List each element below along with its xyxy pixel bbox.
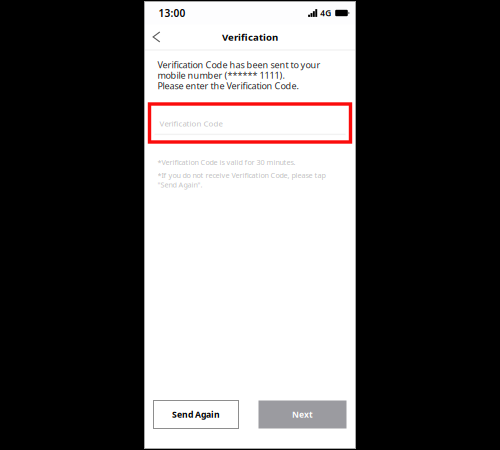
staticText: Verification Code has been sent to your [157, 59, 320, 71]
staticText: Please enter the Verification Code. [157, 80, 298, 92]
staticText: *If you do not receive Verification Code… [157, 170, 325, 180]
staticText: *Verification Code is valid for 30 minut… [157, 157, 295, 167]
staticText: Next [292, 409, 313, 420]
staticText: Send Again [172, 409, 220, 420]
staticText: Verification Code [159, 118, 222, 129]
staticText: mobile number (****** 1111). [157, 69, 284, 81]
button[interactable]: Back [145, 25, 167, 49]
staticText: Verification [222, 30, 278, 44]
staticText: "Send Again". [157, 180, 202, 190]
button[interactable]: Send Again [153, 400, 238, 428]
button[interactable]: Next [258, 400, 346, 428]
staticText: 13:00 [158, 6, 185, 20]
staticText: 4G [320, 7, 331, 19]
